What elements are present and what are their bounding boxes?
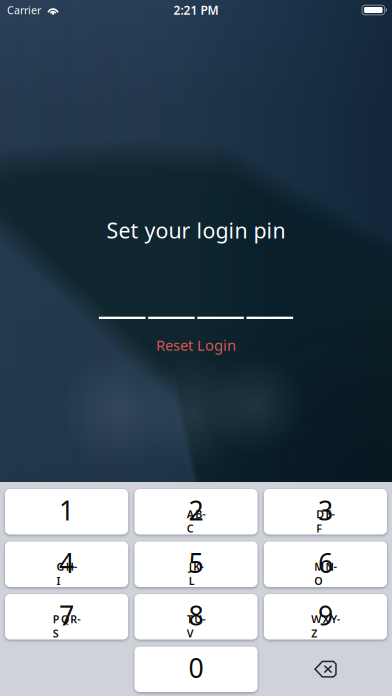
staticText: MNO [314,560,337,588]
button[interactable]: 2 [134,489,258,534]
button[interactable]: 6 [264,541,387,587]
staticText: JKL [189,560,203,588]
staticText: PQRS [53,612,80,640]
staticText: 6 [318,545,333,580]
button[interactable]: 8 [134,594,258,639]
button[interactable]: 0 [134,646,258,692]
staticText: Reset Login [156,335,236,355]
button[interactable]: 9 [264,594,387,639]
staticText: ABC [187,507,205,535]
staticText: 8 [188,597,203,633]
button[interactable]: 4 [5,541,128,587]
staticText: 3 [318,492,333,528]
staticText: GHI [56,560,77,588]
staticText: 9 [318,597,333,633]
staticText: Carrier [7,3,41,17]
button[interactable]: 5 [134,541,258,587]
button[interactable]: Delete [264,646,387,692]
staticText: 4 [59,545,74,580]
staticText: Set your login pin [106,216,285,244]
staticText: 2 [188,492,203,528]
button[interactable]: 7 [5,594,128,639]
button[interactable]: 3 [264,489,387,534]
staticText: WXYZ [311,612,340,640]
staticText: DEF [316,507,335,535]
staticText: TUV [187,612,205,640]
staticText: 7 [59,597,74,633]
staticText: 1 [59,492,74,528]
button[interactable]: Reset Login [156,335,236,355]
staticText: 5 [188,545,203,580]
button[interactable]: 1 [5,489,128,534]
staticText: 0 [188,650,203,685]
staticText: 2:21 PM [173,2,218,18]
